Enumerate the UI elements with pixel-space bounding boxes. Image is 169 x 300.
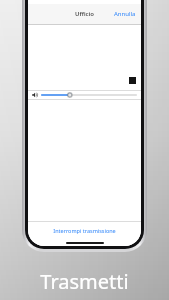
button[interactable]: Interrompi trasmissione (28, 222, 141, 239)
staticText: Interrompi trasmissione (53, 227, 116, 234)
button[interactable]: Annulla (109, 6, 141, 22)
button[interactable]: Interrompi (127, 75, 137, 85)
staticText: Ufficio (28, 10, 141, 18)
staticText: Trasmetti (0, 268, 169, 295)
button[interactable]: Volume (41, 91, 137, 99)
button[interactable]: Volume (28, 91, 141, 99)
staticText: Annulla (114, 10, 136, 18)
